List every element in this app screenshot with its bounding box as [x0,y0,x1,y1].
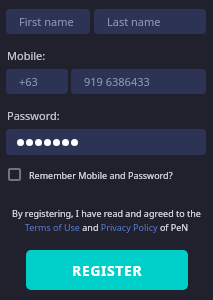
button[interactable]: Password [6,129,206,155]
staticText: Remember Mobile and Password? [29,169,173,181]
staticText: Last name [107,14,161,29]
button[interactable]: +63 [6,69,68,94]
button[interactable]: REGISTER [26,250,188,290]
button[interactable]: First name [6,9,90,34]
button[interactable]: Remember Mobile and Password? [8,168,173,181]
staticText: REGISTER [72,261,143,280]
button[interactable]: 919 6386433 [71,69,206,94]
button[interactable]: Last name [94,9,206,34]
staticText: Mobile: [7,48,46,63]
staticText: By registering, I have read and agreed t… [12,207,201,234]
staticText: Password: [7,108,60,123]
staticText: +63 [19,74,38,89]
staticText: 919 6386433 [84,74,150,89]
staticText: First name [19,14,74,29]
